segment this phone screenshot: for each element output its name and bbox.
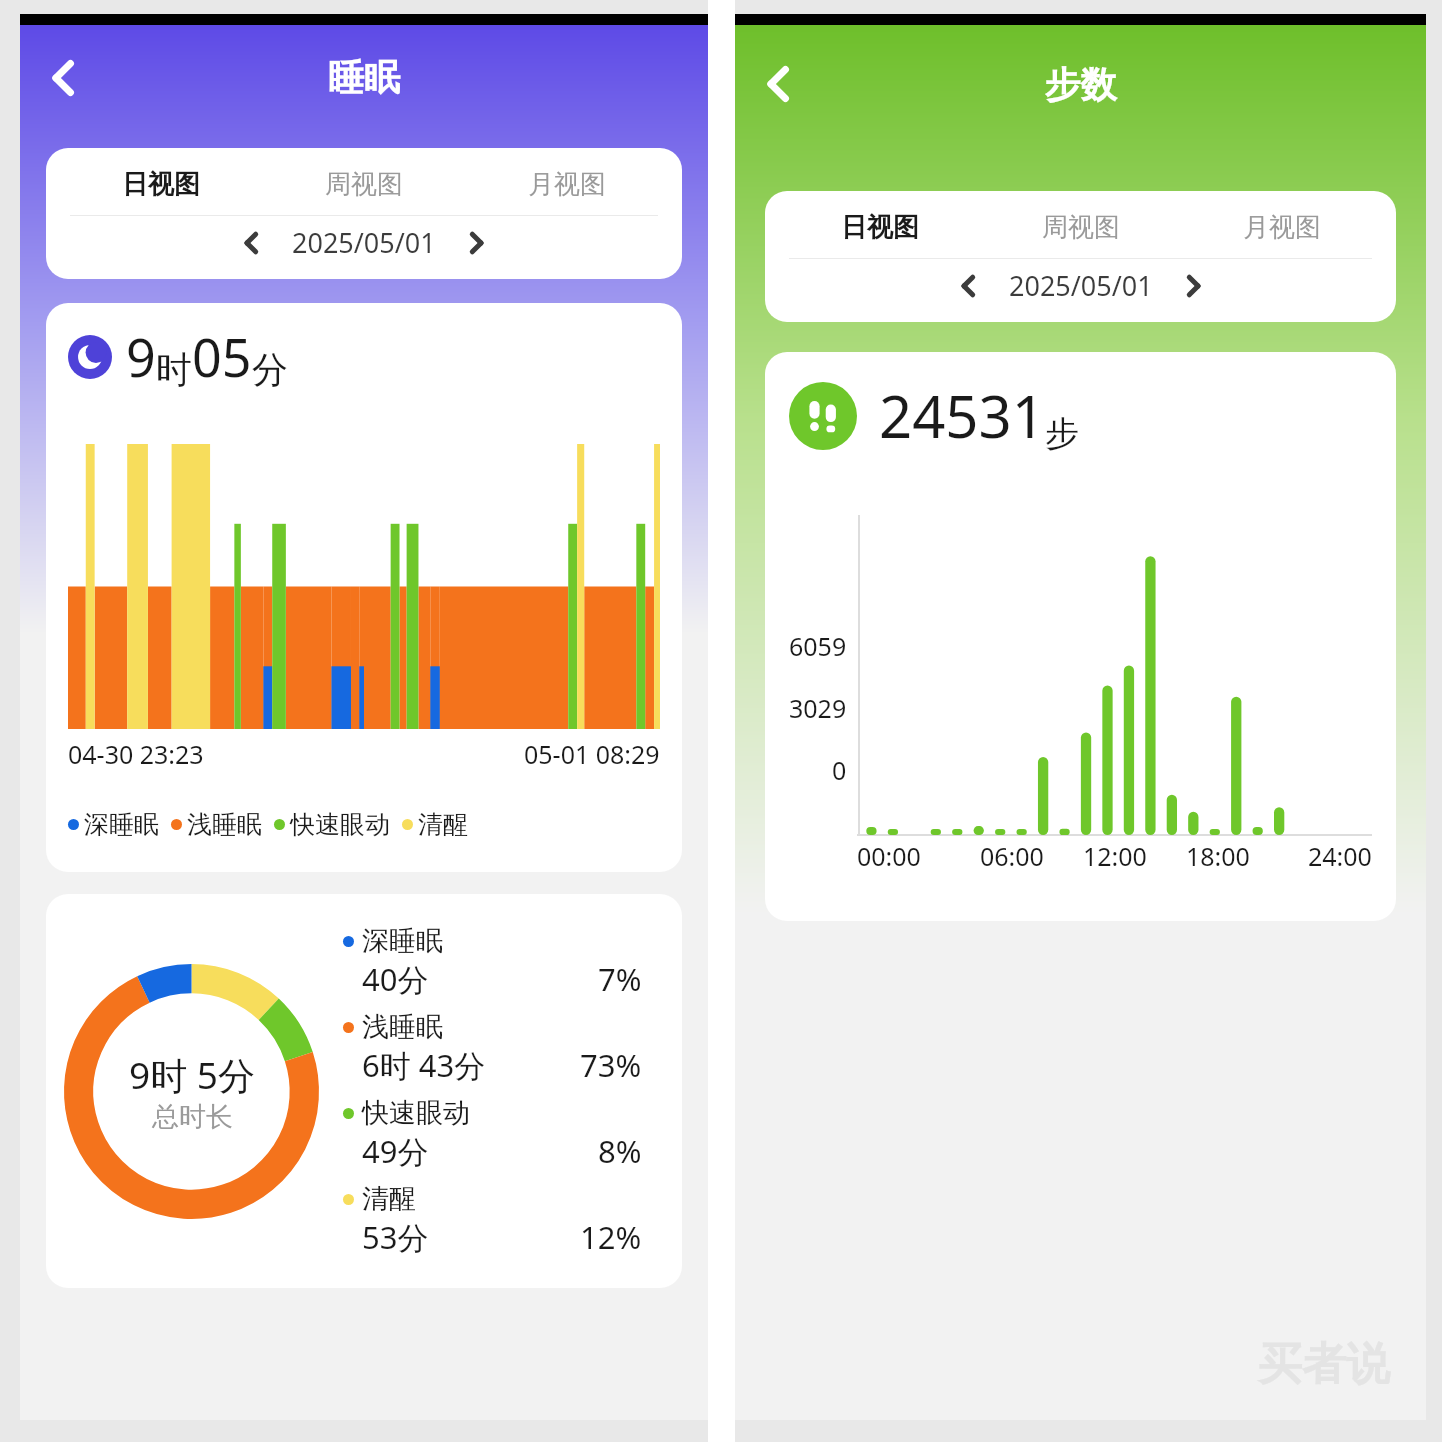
staticText: 18:00 [1186, 839, 1250, 873]
staticText: 40分 [362, 958, 429, 1000]
button[interactable]: 上一天 [953, 269, 987, 303]
staticText: 月视图 [1243, 211, 1321, 244]
staticText: 24:00 [1308, 839, 1372, 873]
staticText: 日视图 [841, 211, 919, 244]
staticText: 12% [580, 1216, 642, 1258]
staticText: 深睡眠 [84, 809, 159, 840]
button[interactable]: 周视图 [980, 201, 1181, 254]
staticText: 日视图 [122, 168, 200, 201]
staticText: 6时 43分 [362, 1044, 486, 1086]
staticText: 6059 [789, 629, 847, 663]
staticText: 73% [580, 1044, 642, 1086]
staticText: 0 [832, 753, 847, 787]
staticText: 时 [156, 347, 192, 392]
button[interactable]: 月视图 [1181, 201, 1382, 254]
staticText: 53分 [362, 1216, 429, 1258]
staticText: 9时 5分 [129, 1049, 255, 1100]
staticText: 周视图 [1042, 211, 1120, 244]
staticText: 总时长 [152, 1100, 233, 1134]
staticText: 清醒 [418, 809, 468, 840]
staticText: 24531 [879, 376, 1045, 455]
staticText: 深睡眠 [362, 924, 443, 958]
staticText: 睡眠 [94, 55, 634, 100]
staticText: 浅睡眠 [187, 809, 262, 840]
staticText: 12:00 [1083, 839, 1147, 873]
staticText: 7% [598, 958, 642, 1000]
button[interactable]: 上一天 [236, 226, 270, 260]
staticText: 步 [1045, 412, 1079, 455]
button[interactable]: 下一天 [1175, 269, 1209, 303]
staticText: 8% [598, 1130, 642, 1172]
staticText: 05 [192, 321, 252, 392]
button[interactable]: 周视图 [262, 158, 465, 211]
staticText: 9 [126, 321, 156, 392]
button[interactable]: 返回 [753, 56, 809, 112]
staticText: 05-01 08:29 [524, 737, 660, 771]
staticText: 快速眼动 [290, 809, 390, 840]
staticText: 月视图 [528, 168, 606, 201]
staticText: 49分 [362, 1130, 429, 1172]
button[interactable]: 日视图 [779, 201, 980, 254]
staticText: 00:00 [857, 839, 921, 873]
button[interactable]: 月视图 [465, 158, 668, 211]
staticText: 清醒 [362, 1182, 416, 1216]
staticText: 06:00 [980, 839, 1044, 873]
staticText: 买者说 [1258, 1337, 1390, 1392]
staticText: 2025/05/01 [1009, 267, 1153, 304]
staticText: 浅睡眠 [362, 1010, 443, 1044]
staticText: 快速眼动 [362, 1096, 470, 1130]
staticText: 2025/05/01 [292, 224, 436, 261]
staticText: 周视图 [325, 168, 403, 201]
button[interactable]: 日视图 [60, 158, 262, 211]
button[interactable]: 下一天 [458, 226, 492, 260]
staticText: 分 [252, 347, 288, 392]
button[interactable]: 返回 [38, 50, 94, 106]
staticText: 步数 [809, 62, 1352, 107]
staticText: 3029 [789, 691, 847, 725]
staticText: 04-30 23:23 [68, 737, 204, 771]
